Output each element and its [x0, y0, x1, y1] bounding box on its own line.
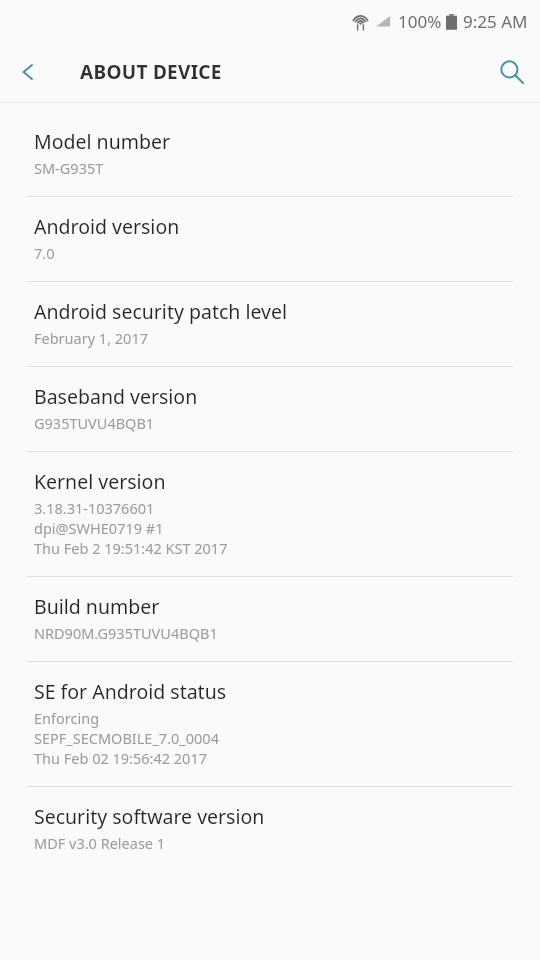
staticText: February 1, 2017	[34, 328, 148, 348]
button[interactable]: SE for Android status	[0, 662, 540, 786]
staticText: MDF v3.0 Release 1	[34, 833, 166, 853]
button[interactable]: Kernel version	[0, 452, 540, 576]
staticText: dpi@SWHE0719 #1	[34, 518, 164, 538]
button[interactable]: Build number	[0, 577, 540, 661]
staticText: Baseband version	[34, 383, 198, 410]
staticText: NRD90M.G935TUVU4BQB1	[34, 623, 218, 643]
button[interactable]: Security software version	[0, 787, 540, 871]
staticText: ABOUT DEVICE	[80, 59, 222, 85]
staticText: SE for Android status	[34, 678, 227, 705]
staticText: SEPF_SECMOBILE_7.0_0004	[34, 728, 219, 748]
staticText: 100%	[398, 10, 442, 33]
staticText: 9:25 AM	[463, 10, 528, 33]
staticText: Android security patch level	[34, 298, 287, 325]
staticText: Build number	[34, 593, 160, 620]
staticText: Android version	[34, 213, 180, 240]
button[interactable]: Back	[0, 44, 56, 100]
staticText: Enforcing	[34, 708, 100, 728]
staticText: Thu Feb 02 19:56:42 2017	[34, 748, 207, 768]
staticText: Kernel version	[34, 468, 166, 495]
button[interactable]: Model number	[0, 112, 540, 196]
button[interactable]: Search	[484, 44, 540, 100]
button[interactable]: Android version	[0, 197, 540, 281]
staticText: G935TUVU4BQB1	[34, 413, 155, 433]
staticText: Thu Feb 2 19:51:42 KST 2017	[34, 538, 228, 558]
button[interactable]: Baseband version	[0, 367, 540, 451]
staticText: 3.18.31-10376601	[34, 498, 155, 518]
staticText: Security software version	[34, 803, 265, 830]
button[interactable]: Android security patch level	[0, 282, 540, 366]
staticText: SM-G935T	[34, 158, 104, 178]
staticText: 7.0	[34, 243, 55, 263]
staticText: Model number	[34, 128, 170, 155]
